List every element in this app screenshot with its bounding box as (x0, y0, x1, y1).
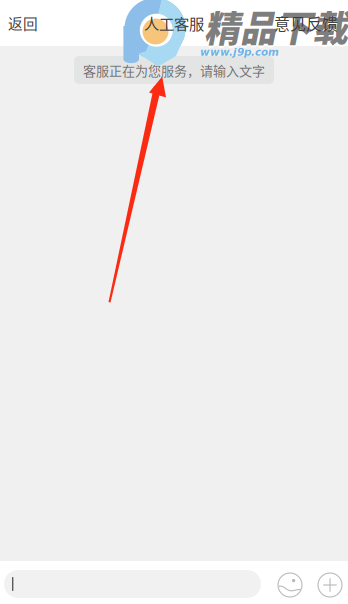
staticText: 人工客服 (144, 12, 204, 34)
staticText: 精品下载 (204, 0, 348, 52)
staticText: 意见反馈 (274, 11, 338, 35)
button[interactable]: 返回 (0, 0, 50, 46)
staticText: www.j9p.com (200, 46, 279, 58)
staticText: 客服正在为您服务，请输入文字 (83, 60, 265, 79)
staticText: 精品下载 (204, 2, 348, 54)
button[interactable]: More (314, 566, 348, 599)
staticText: 精品下载 (202, 0, 346, 52)
button[interactable]: Emoji (261, 566, 314, 599)
staticText: 精品下载 (204, 0, 348, 50)
button[interactable]: 意见反馈 (262, 0, 348, 47)
staticText: 返回 (8, 12, 38, 34)
staticText: 精品下载 (206, 0, 348, 52)
